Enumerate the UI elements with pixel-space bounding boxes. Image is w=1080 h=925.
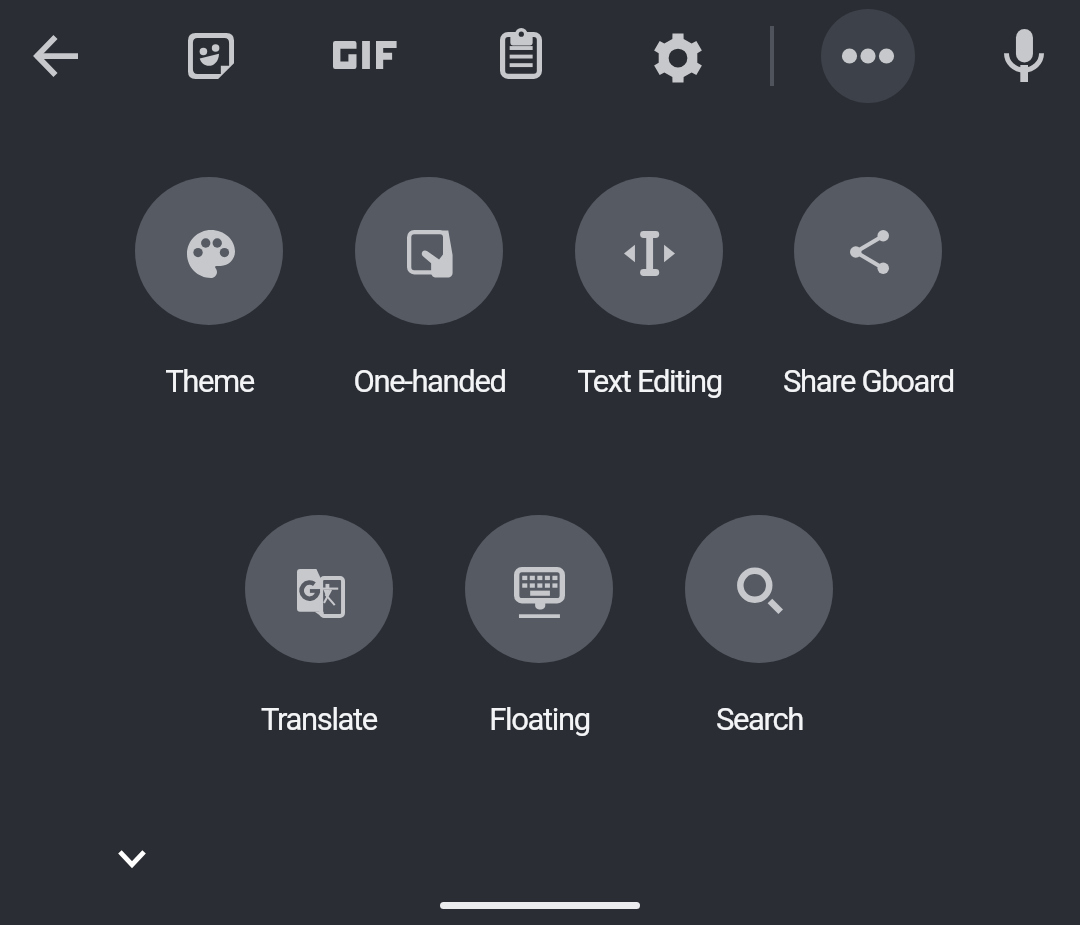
button[interactable]: Translate [209, 515, 429, 737]
staticText: Text Editing [577, 363, 722, 399]
button[interactable]: More options [821, 9, 915, 103]
button[interactable]: Back [18, 18, 93, 94]
staticText: Floating [489, 701, 590, 737]
button[interactable]: Voice input [986, 18, 1062, 93]
button[interactable]: Share Gboard [758, 177, 978, 399]
button[interactable]: Settings [640, 20, 716, 96]
button[interactable]: Clipboard [483, 16, 559, 91]
button[interactable]: GIF [333, 41, 397, 69]
button[interactable]: Theme [99, 177, 319, 399]
staticText: One-handed [353, 363, 506, 399]
staticText: Share Gboard [783, 363, 954, 399]
button[interactable]: Stickers [173, 18, 249, 94]
button[interactable]: Collapse [96, 822, 168, 894]
button[interactable]: One-handed [319, 177, 539, 399]
staticText: Search [716, 701, 803, 737]
staticText: Theme [165, 363, 254, 399]
button[interactable]: Text Editing [539, 177, 759, 399]
staticText: Translate [261, 701, 377, 737]
button[interactable]: Floating [429, 515, 649, 737]
button[interactable]: Search [649, 515, 869, 737]
